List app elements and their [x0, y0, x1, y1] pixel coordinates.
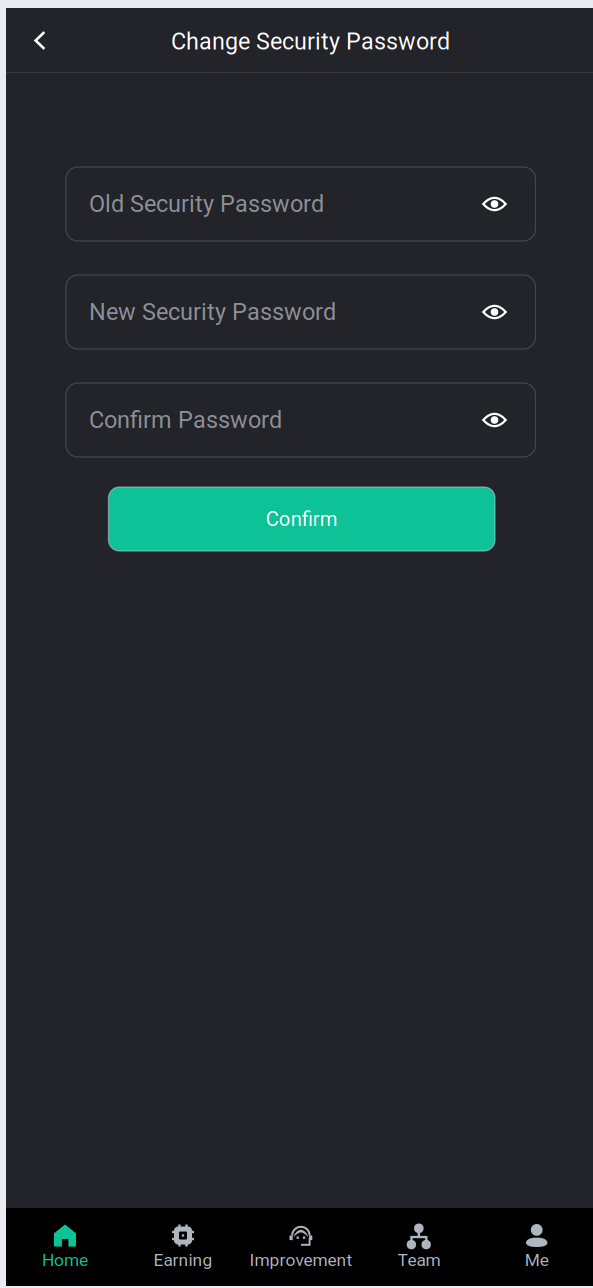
button[interactable]: Me: [476, 1208, 593, 1286]
button[interactable]: Earning: [123, 1208, 241, 1286]
staticText: New Security Password: [89, 298, 336, 326]
staticText: Improvement: [250, 1250, 353, 1270]
staticText: Earning: [153, 1250, 212, 1270]
staticText: Home: [42, 1250, 88, 1270]
button[interactable]: Show New Security Password: [471, 289, 517, 335]
staticText: Team: [397, 1250, 440, 1270]
button[interactable]: Improvement: [241, 1208, 358, 1286]
button[interactable]: Back: [6, 8, 74, 72]
button[interactable]: Home: [6, 1208, 123, 1286]
button[interactable]: Show Confirm Password: [471, 397, 517, 443]
staticText: Change Security Password: [171, 28, 450, 55]
button[interactable]: Team: [358, 1208, 476, 1286]
staticText: Old Security Password: [89, 190, 324, 218]
staticText: Confirm Password: [89, 406, 282, 434]
staticText: Confirm: [266, 507, 338, 531]
button[interactable]: Confirm: [108, 487, 495, 551]
staticText: Me: [525, 1250, 549, 1270]
button[interactable]: Show Old Security Password: [471, 181, 517, 227]
